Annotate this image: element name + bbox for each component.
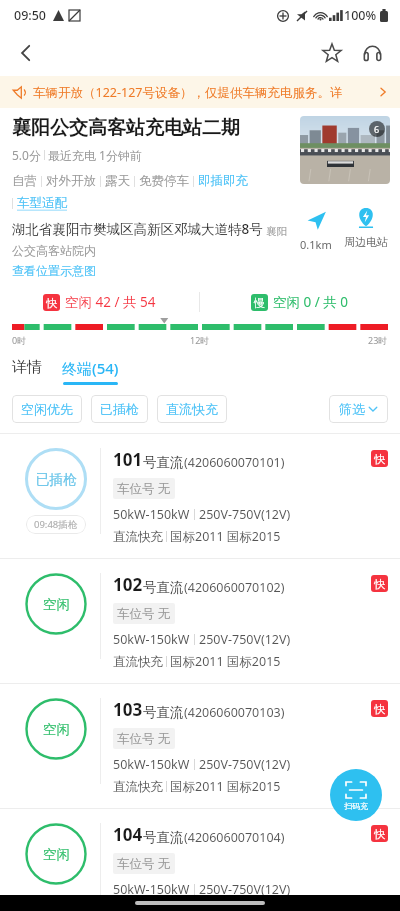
staticText: 50kW-150kW xyxy=(113,631,190,648)
button[interactable]: 周边电站 xyxy=(344,207,388,249)
staticText: (4206060070103) xyxy=(184,704,285,721)
staticText: 快 xyxy=(374,702,385,716)
staticText: 250V-750V(12V) xyxy=(199,506,291,523)
staticText: 终端(54) xyxy=(62,358,119,378)
staticText: 车位号 无 xyxy=(117,730,171,747)
staticText: 09:48插枪 xyxy=(34,518,78,531)
button[interactable]: 车型适配 xyxy=(17,195,67,211)
button[interactable]: 扫码充电 xyxy=(330,769,382,821)
staticText: (4206060070102) xyxy=(184,579,285,596)
staticText: 50kW-150kW xyxy=(113,756,190,773)
button[interactable]: 详情 xyxy=(12,358,50,379)
staticText: 自营 xyxy=(12,173,37,189)
staticText: 100% xyxy=(344,7,377,24)
staticText: 空闲 0 / 共 0 xyxy=(273,293,349,311)
button[interactable]: 导航 xyxy=(300,209,332,252)
staticText: 5.0分 xyxy=(12,147,41,163)
staticText: 直流快充 xyxy=(166,401,218,417)
button[interactable]: 空闲 xyxy=(0,559,400,683)
staticText: 50kW-150kW xyxy=(113,881,190,898)
staticText: (4206060070101) xyxy=(184,454,285,471)
staticText: 即插即充 xyxy=(198,173,248,189)
staticText: 对外开放 xyxy=(46,173,96,189)
button[interactable]: 收藏 xyxy=(312,33,352,73)
staticText: 湖北省襄阳市樊城区高新区邓城大道特8号 xyxy=(12,220,263,238)
button[interactable]: 空闲优先 xyxy=(12,395,82,423)
button[interactable]: 已插枪 xyxy=(0,434,400,558)
button[interactable]: 电站照片 xyxy=(300,116,390,184)
staticText: 号直流 xyxy=(143,829,184,846)
staticText: 露天 xyxy=(105,173,130,189)
staticText: 扫码充 xyxy=(344,801,368,811)
button[interactable]: 已插枪 xyxy=(91,395,148,423)
staticText: 250V-750V(12V) xyxy=(199,756,291,773)
staticText: 0.1km xyxy=(300,237,332,252)
staticText: 104 xyxy=(113,823,143,846)
staticText: 直流快充 xyxy=(113,654,163,670)
staticText: 公交高客站院内 xyxy=(12,243,96,258)
staticText: 12时 xyxy=(190,334,210,346)
staticText: 车辆开放（122-127号设备），仅提供车辆充电服务。详 xyxy=(33,84,378,101)
staticText: 102 xyxy=(113,573,143,596)
staticText: 国标2011 国标2015 xyxy=(170,778,281,795)
staticText: 50kW-150kW xyxy=(113,506,190,523)
staticText: 250V-750V(12V) xyxy=(199,631,291,648)
staticText: 直流快充 xyxy=(113,779,163,795)
staticText: 车位号 无 xyxy=(117,605,171,622)
staticText: 筛选 xyxy=(339,401,365,417)
staticText: 101 xyxy=(113,448,143,471)
staticText: 慢 xyxy=(254,296,265,310)
staticText: 号直流 xyxy=(143,579,184,596)
staticText: 快 xyxy=(374,827,385,841)
staticText: 快 xyxy=(374,452,385,466)
button[interactable]: 终端(54) xyxy=(62,358,119,385)
staticText: 空闲 42 / 共 54 xyxy=(65,293,156,311)
staticText: 已插枪 xyxy=(36,471,77,488)
staticText: 周边电站 xyxy=(344,235,388,249)
button[interactable]: 直流快充 xyxy=(157,395,227,423)
button[interactable]: 查看位置示意图 xyxy=(12,263,96,278)
staticText: 快 xyxy=(46,296,57,310)
button[interactable]: 空闲 xyxy=(0,684,400,808)
staticText: 号直流 xyxy=(143,454,184,471)
staticText: 23时 xyxy=(368,334,388,346)
button[interactable]: 客服 xyxy=(352,33,392,73)
staticText: 已插枪 xyxy=(100,401,139,417)
staticText: 最近充电 1分钟前 xyxy=(48,147,142,163)
staticText: 车位号 无 xyxy=(117,480,171,497)
staticText: 09:50 xyxy=(14,7,47,24)
staticText: 襄阳 xyxy=(266,225,287,238)
button[interactable]: 车辆开放（122-127号设备），仅提供车辆充电服务。详 xyxy=(0,76,400,108)
staticText: 快 xyxy=(374,577,385,591)
staticText: 国标2011 国标2015 xyxy=(170,653,281,670)
staticText: 免费停车 xyxy=(139,173,189,189)
staticText: 0时 xyxy=(12,334,27,346)
staticText: 襄阳公交高客站充电站二期 xyxy=(12,116,240,140)
staticText: 号直流 xyxy=(143,704,184,721)
staticText: 空闲 xyxy=(43,596,70,613)
staticText: 250V-750V(12V) xyxy=(199,881,291,898)
staticText: 直流快充 xyxy=(113,529,163,545)
staticText: 空闲 xyxy=(43,721,70,738)
staticText: 空闲优先 xyxy=(21,401,73,417)
button[interactable]: 返回 xyxy=(6,33,46,73)
staticText: 6 xyxy=(374,123,380,135)
button[interactable]: 空闲 xyxy=(0,809,400,911)
staticText: 车位号 无 xyxy=(117,855,171,872)
staticText: (4206060070104) xyxy=(184,829,285,846)
staticText: 空闲 xyxy=(43,846,70,863)
staticText: 103 xyxy=(113,698,143,721)
staticText: 详情 xyxy=(12,358,42,377)
button[interactable]: 筛选 xyxy=(329,395,388,423)
staticText: 国标2011 国标2015 xyxy=(170,528,281,545)
staticText: 直流快充 xyxy=(113,903,163,911)
staticText: 国标2011 国标2015 xyxy=(170,903,281,911)
